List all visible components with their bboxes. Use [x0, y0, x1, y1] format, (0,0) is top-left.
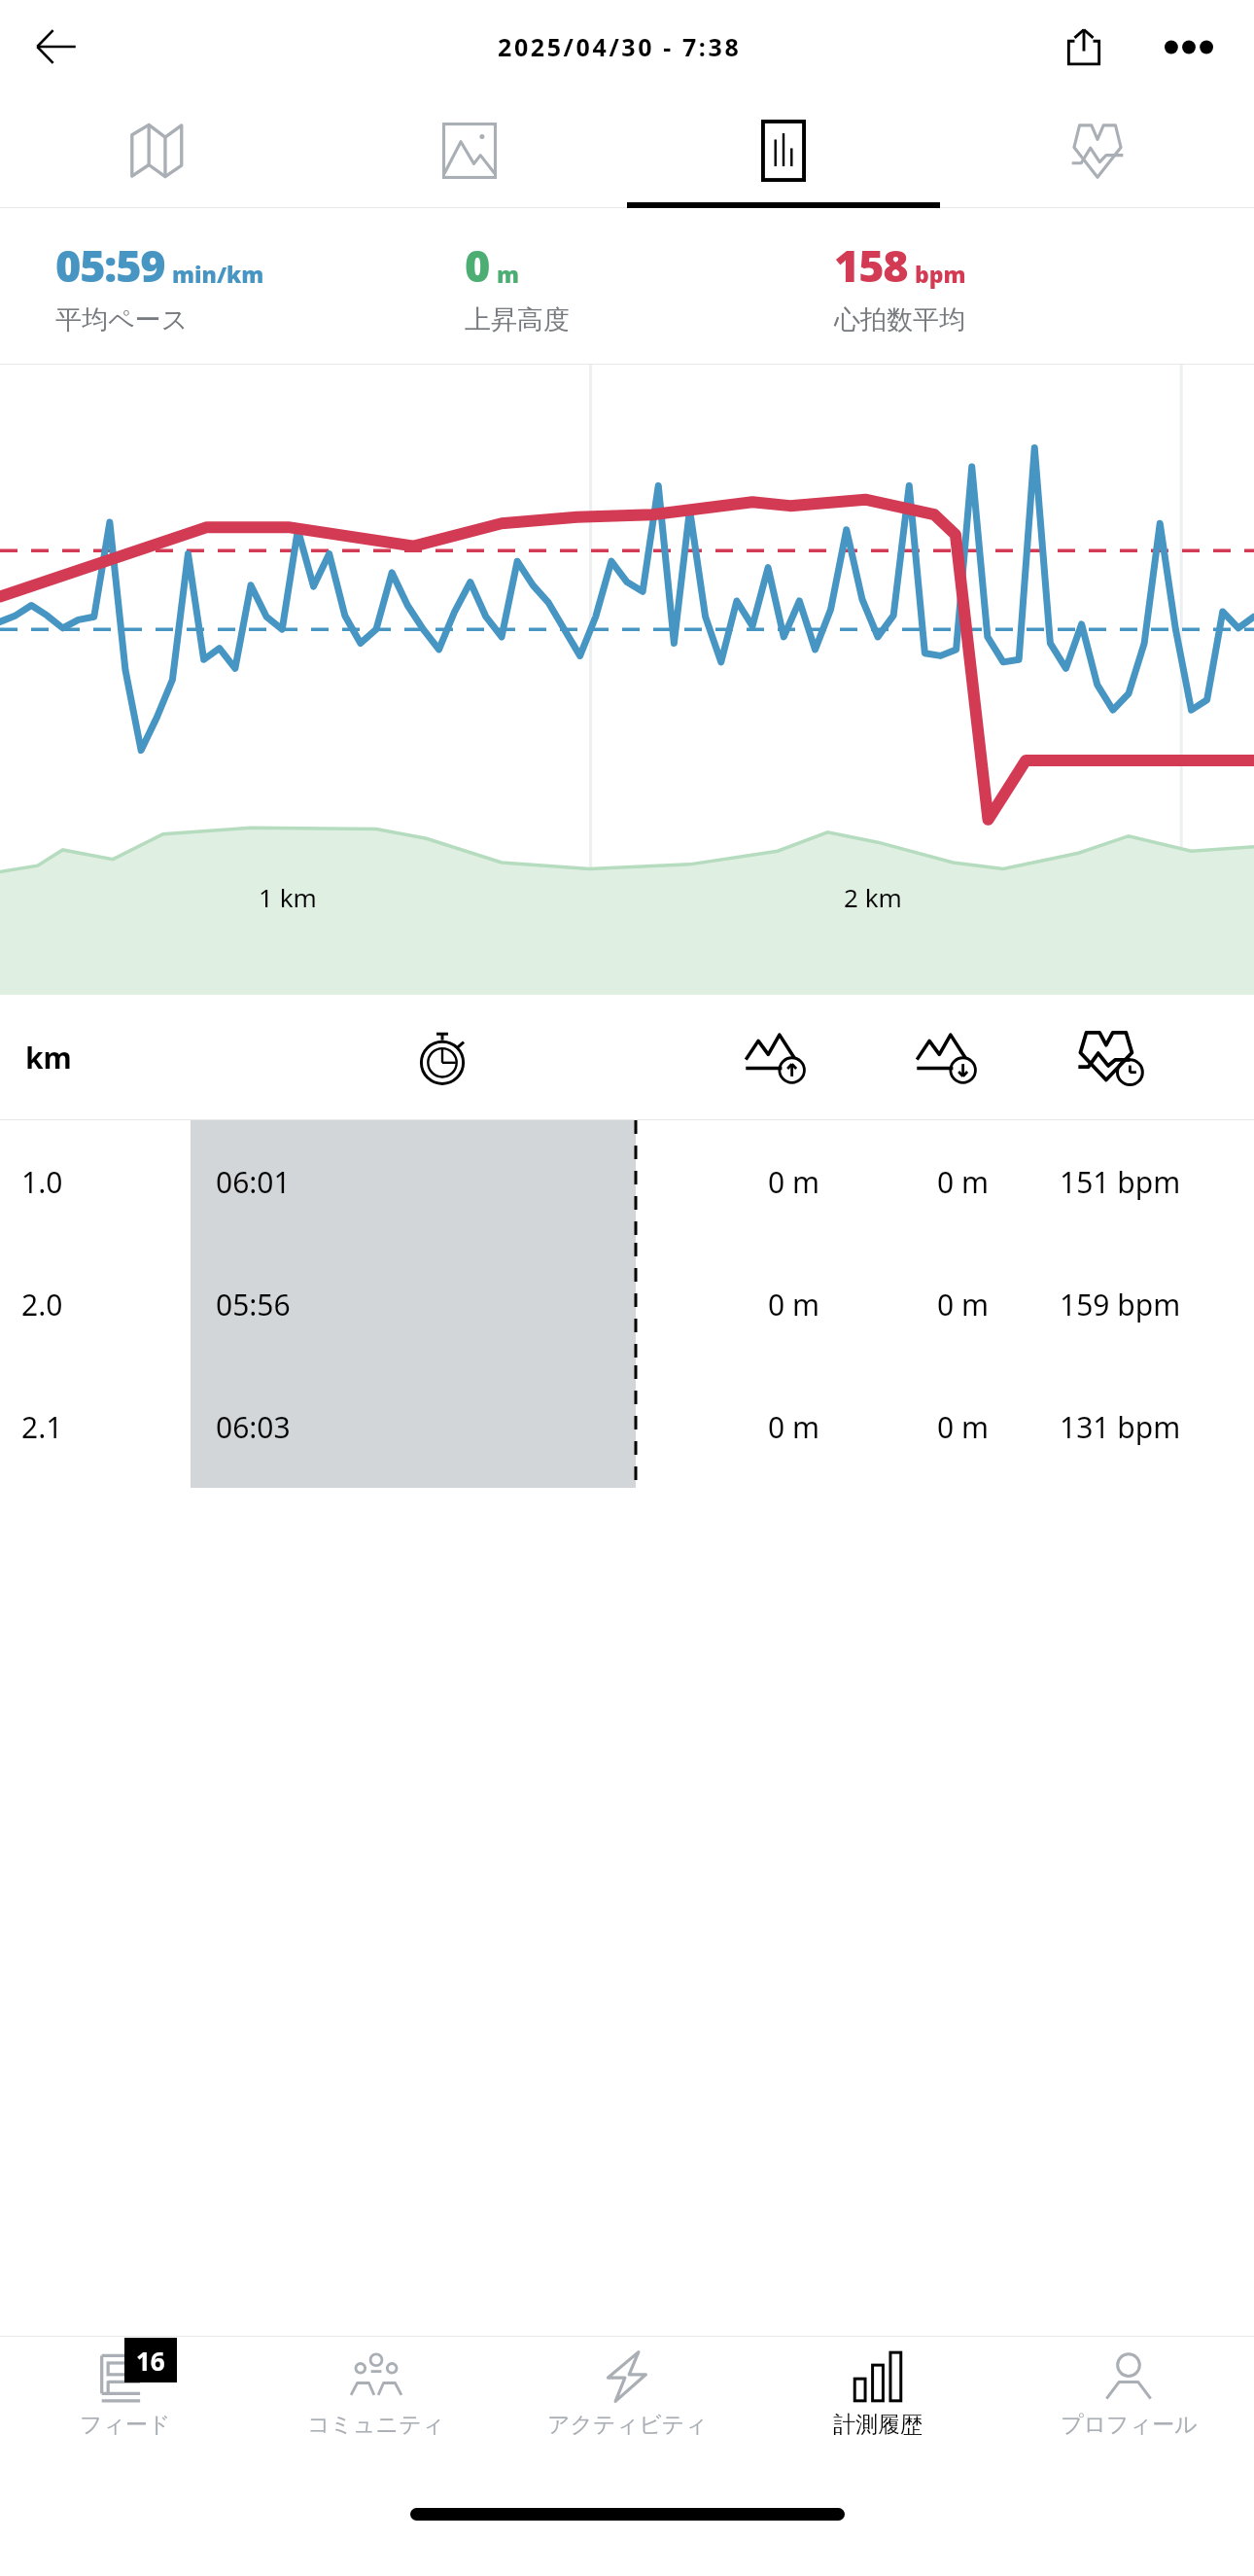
- staticText: 2.0: [21, 1285, 63, 1324]
- button[interactable]: 2.1: [0, 1365, 1254, 1488]
- staticText: 心拍数平均: [834, 303, 965, 336]
- staticText: 0 m: [768, 1162, 820, 1202]
- staticText: 131 bpm: [1060, 1407, 1181, 1447]
- button[interactable]: Heart rate: [940, 93, 1254, 208]
- button[interactable]: コミュニティ: [251, 2337, 502, 2483]
- staticText: 06:03: [216, 1407, 291, 1447]
- staticText: 0 m: [937, 1407, 990, 1447]
- staticText: m: [497, 259, 519, 289]
- staticText: プロフィール: [1061, 2411, 1198, 2439]
- staticText: 06:01: [216, 1162, 291, 1202]
- button[interactable]: Share: [1048, 11, 1120, 83]
- staticText: 0 m: [768, 1407, 820, 1447]
- staticText: 0: [465, 235, 490, 295]
- button[interactable]: 2.0: [0, 1243, 1254, 1365]
- staticText: 16: [136, 2344, 165, 2378]
- button[interactable]: 1.0: [0, 1120, 1254, 1243]
- staticText: 1.0: [21, 1162, 63, 1202]
- button[interactable]: Map: [0, 93, 313, 208]
- staticText: 平均ペース: [55, 303, 189, 336]
- staticText: フィード: [80, 2411, 171, 2439]
- staticText: 05:56: [216, 1285, 291, 1324]
- staticText: 158: [834, 235, 908, 295]
- button[interactable]: Back: [21, 12, 91, 82]
- button[interactable]: アクティビティ: [502, 2337, 752, 2483]
- staticText: 2025/04/30 - 7:38: [498, 30, 742, 63]
- staticText: 上昇高度: [465, 303, 570, 336]
- staticText: km: [25, 1038, 72, 1077]
- staticText: 151 bpm: [1060, 1162, 1181, 1202]
- staticText: 2.1: [21, 1407, 63, 1447]
- staticText: 159 bpm: [1060, 1285, 1181, 1324]
- staticText: コミュニティ: [307, 2411, 445, 2439]
- staticText: 0 m: [937, 1162, 990, 1202]
- button[interactable]: Photos: [313, 93, 626, 208]
- staticText: アクティビティ: [547, 2411, 708, 2439]
- staticText: 0 m: [937, 1285, 990, 1324]
- staticText: min/km: [172, 259, 264, 289]
- button[interactable]: プロフィール: [1003, 2337, 1254, 2483]
- staticText: 05:59: [55, 235, 165, 295]
- button[interactable]: 16: [0, 2337, 251, 2483]
- staticText: 1 km: [259, 880, 317, 914]
- staticText: bpm: [915, 259, 966, 289]
- button[interactable]: Charts: [626, 93, 940, 208]
- button[interactable]: More options: [1151, 9, 1227, 85]
- button[interactable]: 計測履歴: [752, 2337, 1003, 2483]
- staticText: 計測履歴: [833, 2411, 923, 2439]
- staticText: 2 km: [844, 880, 902, 914]
- staticText: 0 m: [768, 1285, 820, 1324]
